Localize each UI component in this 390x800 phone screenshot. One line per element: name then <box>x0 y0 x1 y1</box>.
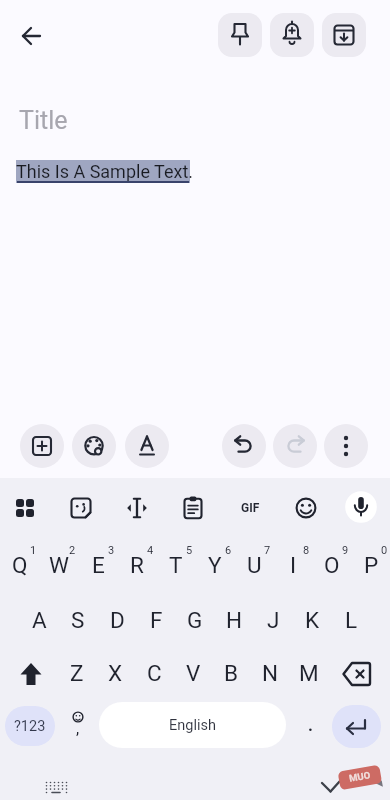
staticText: W <box>49 552 69 578</box>
staticText: . <box>308 715 313 735</box>
button[interactable] <box>334 649 378 693</box>
staticText: O <box>324 552 340 578</box>
staticText: 0 <box>381 544 388 557</box>
button[interactable] <box>273 424 317 468</box>
staticText: 1 <box>30 544 37 557</box>
button[interactable] <box>125 424 169 468</box>
staticText: 6 <box>225 544 232 557</box>
button[interactable] <box>9 649 53 693</box>
button[interactable]: P <box>352 545 390 585</box>
button[interactable]: K <box>293 600 331 640</box>
button[interactable]: W <box>40 545 78 585</box>
staticText: P <box>364 552 379 578</box>
staticText: F <box>150 607 163 633</box>
staticText: , <box>76 719 80 738</box>
button[interactable]: ?123 <box>5 706 55 746</box>
button[interactable]: E <box>79 545 117 585</box>
button[interactable]: R <box>118 545 156 585</box>
button[interactable]: B <box>212 653 250 693</box>
button[interactable]: F <box>137 600 175 640</box>
staticText: Y <box>208 552 222 578</box>
button[interactable] <box>20 424 64 468</box>
button[interactable]: U <box>235 545 273 585</box>
staticText: U <box>247 552 262 578</box>
staticText: I <box>290 552 297 578</box>
staticText: J <box>267 607 280 633</box>
staticText: 5 <box>186 544 193 557</box>
staticText: This Is A Sample Text. <box>16 161 194 182</box>
button[interactable]: Z <box>58 653 96 693</box>
staticText: 3 <box>108 544 115 557</box>
staticText: C <box>147 660 162 686</box>
staticText: 9 <box>342 544 349 557</box>
button[interactable]: English <box>99 702 286 748</box>
button[interactable]: H <box>215 600 253 640</box>
staticText: Q <box>12 552 28 578</box>
button[interactable] <box>324 424 368 468</box>
staticText: B <box>224 660 239 686</box>
button[interactable]: V <box>174 653 212 693</box>
staticText: T <box>169 552 183 578</box>
button[interactable]: . <box>296 702 324 748</box>
button[interactable]: L <box>332 600 370 640</box>
button[interactable]: , <box>60 702 94 750</box>
button[interactable]: G <box>176 600 214 640</box>
staticText: 2 <box>69 544 76 557</box>
button[interactable] <box>115 486 159 530</box>
staticText: E <box>92 552 105 578</box>
staticText: English <box>169 717 216 734</box>
button[interactable]: A <box>20 600 58 640</box>
button[interactable] <box>171 486 215 530</box>
button[interactable] <box>332 705 381 748</box>
button[interactable] <box>322 13 366 57</box>
button[interactable] <box>270 13 314 57</box>
button[interactable] <box>218 13 262 57</box>
button[interactable]: S <box>59 600 97 640</box>
staticText: G <box>187 607 203 633</box>
button[interactable]: T <box>157 545 195 585</box>
staticText: 7 <box>264 544 271 557</box>
button[interactable]: X <box>96 653 134 693</box>
staticText: L <box>345 607 358 633</box>
button[interactable] <box>12 16 52 56</box>
staticText: K <box>305 607 320 633</box>
button[interactable]: Y <box>196 545 234 585</box>
staticText: H <box>226 607 243 633</box>
staticText: 8 <box>303 544 310 557</box>
staticText: A <box>32 607 47 633</box>
button[interactable]: Q <box>1 545 39 585</box>
button[interactable]: GIF <box>228 486 272 530</box>
staticText: ?123 <box>14 718 46 735</box>
staticText: R <box>130 552 144 578</box>
button[interactable] <box>72 424 116 468</box>
staticText: X <box>108 660 123 686</box>
button[interactable] <box>3 486 47 530</box>
staticText: 4 <box>147 544 154 557</box>
staticText: M <box>299 660 319 686</box>
button[interactable]: O <box>313 545 351 585</box>
staticText: MUO <box>348 769 372 784</box>
button[interactable] <box>284 486 328 530</box>
staticText: GIF <box>241 501 260 515</box>
staticText: Z <box>70 660 84 686</box>
staticText: Title <box>19 106 68 135</box>
button[interactable]: M <box>290 653 328 693</box>
staticText: D <box>110 607 125 633</box>
button[interactable] <box>59 486 103 530</box>
button[interactable]: N <box>251 653 289 693</box>
staticText: N <box>262 660 279 686</box>
button[interactable]: C <box>135 653 173 693</box>
button[interactable]: J <box>254 600 292 640</box>
button[interactable] <box>339 486 383 530</box>
staticText: V <box>186 660 201 686</box>
staticText: S <box>71 607 85 633</box>
button[interactable] <box>222 424 266 468</box>
button[interactable]: I <box>274 545 312 585</box>
button[interactable]: D <box>98 600 136 640</box>
